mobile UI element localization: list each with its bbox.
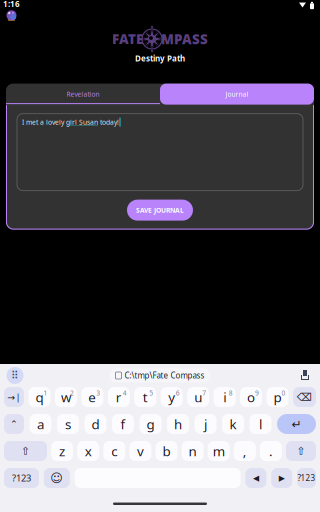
staticText: ↵ (291, 417, 301, 431)
staticText: ◀ (253, 473, 259, 483)
button[interactable]: 3 (81, 387, 103, 407)
staticText: p (273, 388, 281, 406)
staticText: 4 (123, 388, 127, 397)
staticText: 9 (255, 388, 259, 397)
staticText: y (168, 388, 175, 406)
staticText: 6 (176, 388, 180, 397)
staticText: MPASS (161, 30, 208, 48)
button[interactable]: Revelation (6, 84, 160, 104)
button[interactable]: ⌃ (4, 414, 24, 434)
staticText: ?123 (12, 472, 31, 484)
staticText: ⇧ (21, 445, 30, 457)
button[interactable]: ?123 (4, 468, 39, 488)
button[interactable]: ◀ (245, 468, 266, 488)
staticText: l (259, 415, 262, 433)
staticText: ▶ (279, 473, 285, 483)
button[interactable]: d (84, 414, 106, 434)
staticText: ☺ (50, 471, 63, 485)
button[interactable]: j (194, 414, 216, 434)
staticText: n (189, 442, 197, 460)
button[interactable]: b (155, 441, 177, 461)
staticText: . (269, 442, 273, 460)
button[interactable]: s (57, 414, 79, 434)
button[interactable]: ?123 (297, 468, 316, 488)
staticText: 5 (149, 388, 153, 397)
staticText: t (143, 388, 148, 406)
button[interactable]: 6 (161, 387, 183, 407)
button[interactable]: a (29, 414, 51, 434)
button[interactable]: 9 (240, 387, 262, 407)
staticText: c (111, 442, 117, 460)
button[interactable]: 7 (187, 387, 209, 407)
staticText: ⌃ (10, 419, 18, 429)
button[interactable]: c (103, 441, 125, 461)
button[interactable]: C:\tmp\Fate Compass (109, 368, 210, 382)
staticText: I met a lovely girl Susan today! (22, 118, 119, 127)
staticText: 1 (43, 388, 47, 397)
staticText: x (85, 442, 92, 460)
button[interactable]: ⇧ (286, 441, 316, 461)
button[interactable]: 4 (108, 387, 130, 407)
button[interactable]: 0 (266, 387, 288, 407)
button[interactable]: x (77, 441, 99, 461)
staticText: ⌫ (297, 391, 312, 403)
staticText: 2 (70, 388, 74, 397)
staticText: ?123 (297, 473, 315, 483)
staticText: →| (7, 391, 20, 403)
staticText: k (229, 415, 236, 433)
button[interactable]: Clipboard (3, 364, 27, 386)
button[interactable]: ▶ (271, 468, 292, 488)
button[interactable]: k (222, 414, 244, 434)
button[interactable]: 2 (55, 387, 77, 407)
button[interactable]: m (208, 441, 230, 461)
button[interactable]: f (112, 414, 134, 434)
staticText: w (61, 388, 71, 406)
staticText: s (65, 415, 71, 433)
staticText: ⇧ (296, 445, 305, 457)
staticText: 7 (202, 388, 206, 397)
staticText: d (91, 415, 99, 433)
button[interactable]: ⌫ (293, 387, 316, 407)
staticText: b (162, 442, 170, 460)
button[interactable]: ↵ (277, 414, 316, 434)
staticText: m (213, 442, 225, 460)
staticText: , (243, 442, 247, 460)
button[interactable]: 5 (134, 387, 156, 407)
button[interactable]: Journal (160, 84, 314, 105)
button[interactable]: , (234, 441, 256, 461)
staticText: FATE (112, 30, 143, 48)
staticText: z (59, 442, 65, 460)
staticText: f (120, 415, 125, 433)
staticText: o (247, 388, 255, 406)
staticText: a (37, 415, 44, 433)
button[interactable]: z (51, 441, 73, 461)
button[interactable]: Voice input (293, 364, 317, 386)
button[interactable]: h (167, 414, 189, 434)
staticText: e (88, 388, 96, 406)
staticText: Journal (225, 90, 248, 99)
button[interactable]: . (260, 441, 282, 461)
button[interactable]: l (249, 414, 271, 434)
staticText: 8 (229, 388, 233, 397)
staticText: 3 (96, 388, 100, 397)
staticText: 1:16 (3, 0, 20, 9)
staticText: j (204, 415, 207, 433)
button[interactable]: 1 (28, 387, 50, 407)
button[interactable]: ☺ (44, 468, 70, 488)
button[interactable]: ⇧ (4, 441, 47, 461)
staticText: SAVE JOURNAL (136, 206, 184, 215)
button[interactable]: SAVE JOURNAL (127, 200, 193, 221)
button[interactable]: n (182, 441, 204, 461)
staticText: g (146, 415, 154, 433)
staticText: u (194, 388, 202, 406)
button[interactable]: g (139, 414, 161, 434)
staticText: 0 (281, 388, 285, 397)
staticText: Revelation (66, 90, 99, 99)
button[interactable]: 8 (214, 387, 236, 407)
button[interactable]: v (129, 441, 151, 461)
staticText: ⠿ (11, 369, 19, 381)
button[interactable]: →| (4, 387, 24, 407)
staticText: r (116, 388, 122, 406)
staticText: i (223, 388, 226, 406)
